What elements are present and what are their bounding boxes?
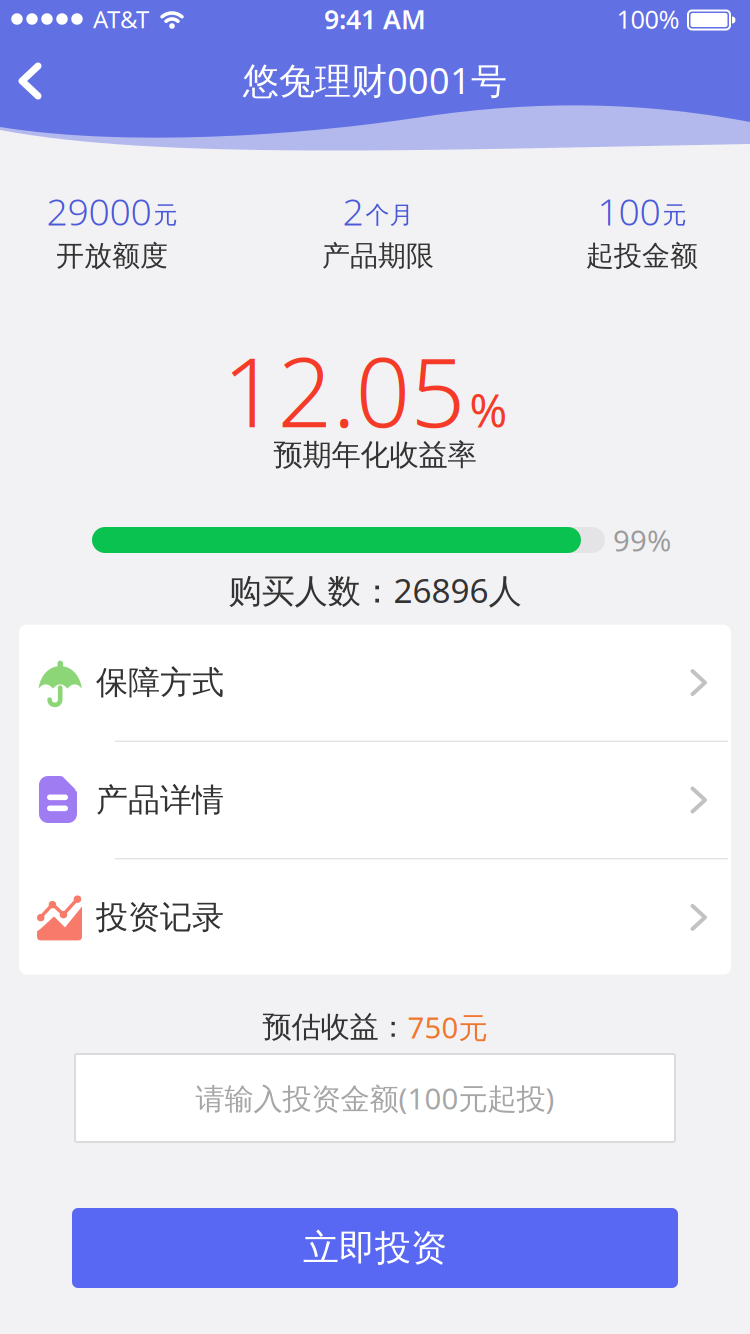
staticText: 个月 xyxy=(365,200,413,230)
button[interactable]: 产品详情 xyxy=(19,742,731,858)
staticText: 元 xyxy=(662,200,686,230)
staticText: 29000 xyxy=(46,186,151,236)
staticText: 750元 xyxy=(407,1007,487,1046)
staticText: 购买人数：26896人 xyxy=(228,568,521,612)
staticText: 99% xyxy=(613,520,671,559)
staticText: 12.05 xyxy=(222,326,465,454)
staticText: 产品详情 xyxy=(96,780,224,820)
button[interactable]: Back xyxy=(12,61,50,101)
staticText: 起投金额 xyxy=(586,239,698,273)
staticText: 立即投资 xyxy=(303,1226,447,1270)
staticText: AT&T xyxy=(93,3,149,35)
staticText: 产品期限 xyxy=(322,239,434,273)
staticText: 投资记录 xyxy=(96,898,224,937)
staticText: 9:41 AM xyxy=(324,1,426,37)
button[interactable]: 立即投资 xyxy=(72,1208,678,1288)
staticText: 2 xyxy=(342,186,363,236)
staticText: 预估收益： xyxy=(262,1009,407,1045)
button[interactable]: 投资记录 xyxy=(19,859,731,975)
button[interactable]: 保障方式 xyxy=(19,625,731,741)
staticText: 请输入投资金额(100元起投) xyxy=(195,1078,554,1117)
staticText: 元 xyxy=(153,200,177,230)
staticText: 100% xyxy=(616,2,679,36)
staticText: 预期年化收益率 xyxy=(273,437,476,473)
staticText: 保障方式 xyxy=(96,663,224,702)
staticText: % xyxy=(469,380,507,440)
button[interactable]: 请输入投资金额(100元起投) xyxy=(75,1054,675,1142)
staticText: 100 xyxy=(597,186,660,236)
staticText: 开放额度 xyxy=(56,239,168,273)
staticText: 悠兔理财0001号 xyxy=(243,56,507,104)
